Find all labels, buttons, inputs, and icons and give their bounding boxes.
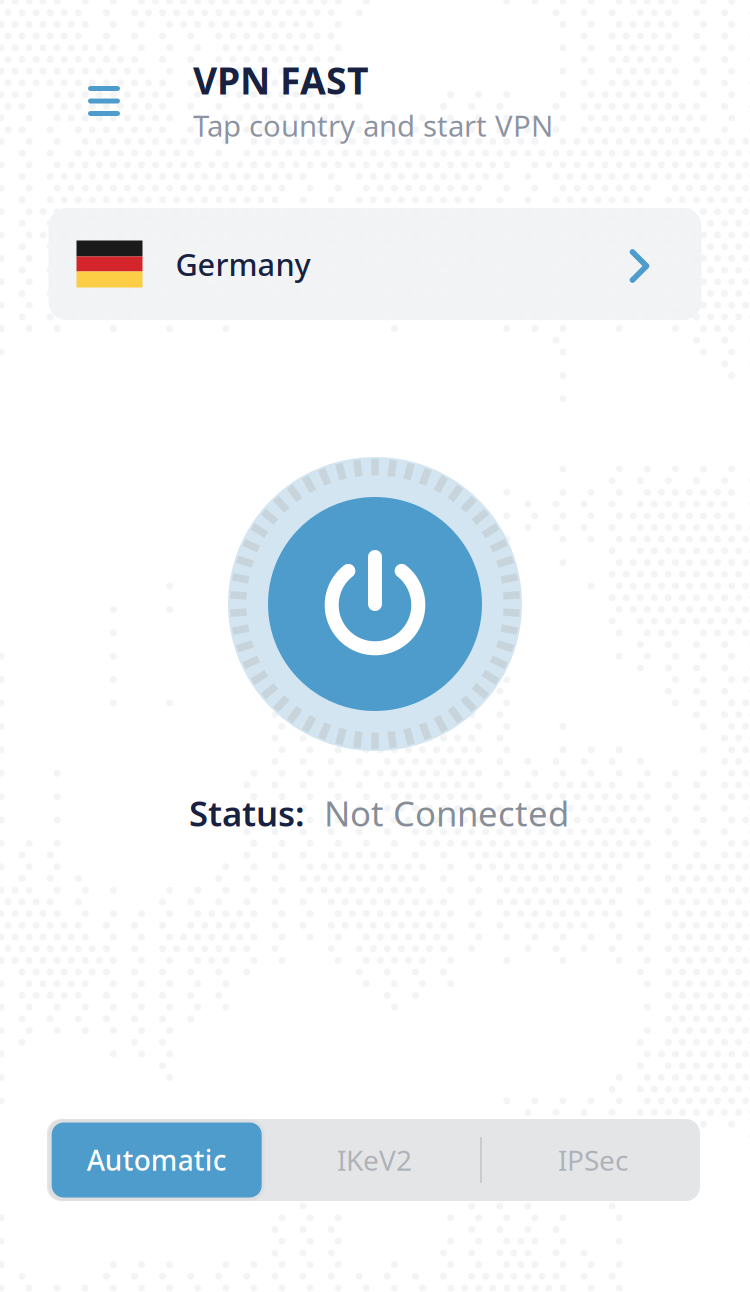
button[interactable]: Power — [225, 454, 525, 754]
staticText: Automatic — [87, 1141, 227, 1179]
button[interactable]: IKeV2 — [274, 1122, 474, 1197]
staticText: Not Connected — [324, 790, 569, 836]
staticText: IPSec — [558, 1141, 628, 1179]
staticText: Status: — [189, 790, 305, 836]
button[interactable]: Germany — [48, 208, 701, 320]
staticText: IKeV2 — [337, 1141, 412, 1179]
button[interactable]: Automatic — [52, 1122, 262, 1197]
button[interactable]: Menu — [69, 66, 139, 136]
staticText: VPN FAST — [193, 55, 369, 105]
staticText: Germany — [175, 244, 310, 284]
button[interactable]: IPSec — [493, 1122, 693, 1197]
staticText: Tap country and start VPN — [193, 106, 553, 145]
